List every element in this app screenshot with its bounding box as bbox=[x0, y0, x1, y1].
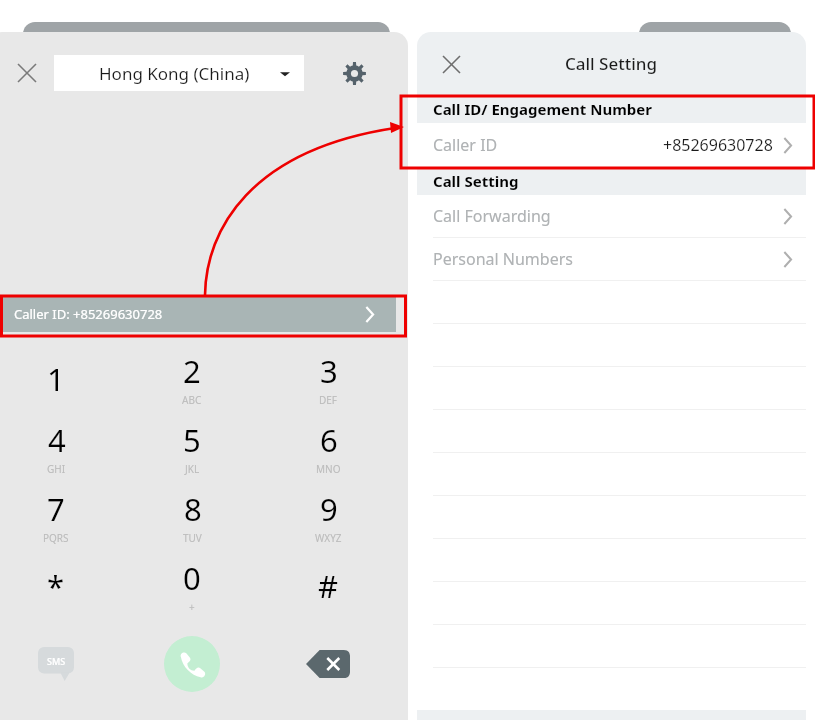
staticText: GHI bbox=[47, 462, 66, 476]
staticText: 9 bbox=[320, 488, 338, 530]
button[interactable]: 7 bbox=[0, 482, 124, 551]
button[interactable]: # bbox=[260, 551, 396, 620]
staticText: Personal Numbers bbox=[433, 248, 573, 270]
button[interactable]: Backspace bbox=[260, 626, 396, 702]
staticText: Call Setting bbox=[565, 52, 658, 75]
staticText: 2 bbox=[183, 350, 201, 392]
staticText: * bbox=[47, 565, 65, 607]
button[interactable]: 1 bbox=[0, 344, 124, 413]
button[interactable]: Send SMS bbox=[0, 626, 124, 702]
staticText: 6 bbox=[320, 419, 338, 461]
button[interactable]: 2 bbox=[124, 344, 260, 413]
button[interactable]: Hong Kong (China) bbox=[54, 55, 304, 91]
button[interactable]: Caller ID bbox=[417, 123, 806, 167]
button[interactable]: * bbox=[0, 551, 124, 620]
button[interactable]: Close bbox=[427, 40, 475, 88]
staticText: TUV bbox=[183, 531, 202, 545]
staticText: Call ID/ Engagement Number bbox=[433, 99, 652, 119]
button[interactable]: 5 bbox=[124, 413, 260, 482]
button[interactable]: Caller ID: +85269630728 bbox=[0, 296, 396, 332]
staticText: # bbox=[318, 565, 339, 607]
staticText: 7 bbox=[47, 488, 65, 530]
staticText: MNO bbox=[316, 462, 341, 476]
button[interactable]: Call bbox=[124, 626, 260, 702]
button[interactable]: 3 bbox=[260, 344, 396, 413]
button[interactable]: 4 bbox=[0, 413, 124, 482]
staticText: 1 bbox=[47, 358, 65, 400]
staticText: 5 bbox=[183, 419, 201, 461]
staticText: Caller ID: +85269630728 bbox=[14, 305, 163, 323]
staticText: ABC bbox=[182, 393, 202, 407]
staticText: Caller ID bbox=[433, 134, 498, 156]
staticText: Call Setting bbox=[433, 171, 519, 191]
staticText: +85269630728 bbox=[663, 134, 773, 156]
button[interactable]: Personal Numbers bbox=[417, 238, 806, 280]
staticText: 4 bbox=[48, 419, 66, 461]
button[interactable]: 6 bbox=[260, 413, 396, 482]
staticText: Call Forwarding bbox=[433, 205, 551, 227]
staticText: 0 bbox=[183, 557, 201, 599]
button[interactable]: Settings bbox=[332, 51, 376, 95]
staticText: 8 bbox=[184, 488, 202, 530]
button[interactable]: 0 bbox=[124, 551, 260, 620]
button[interactable]: Close bbox=[0, 46, 54, 100]
staticText: 3 bbox=[320, 350, 338, 392]
staticText: DEF bbox=[319, 393, 338, 407]
button[interactable]: Call Forwarding bbox=[417, 195, 806, 237]
button[interactable]: 9 bbox=[260, 482, 396, 551]
staticText: PQRS bbox=[43, 531, 69, 545]
button[interactable]: 8 bbox=[124, 482, 260, 551]
staticText: WXYZ bbox=[315, 531, 342, 545]
staticText: SMS bbox=[47, 655, 66, 667]
staticText: JKL bbox=[185, 462, 200, 476]
staticText: Hong Kong (China) bbox=[99, 62, 250, 85]
staticText: + bbox=[189, 600, 195, 614]
